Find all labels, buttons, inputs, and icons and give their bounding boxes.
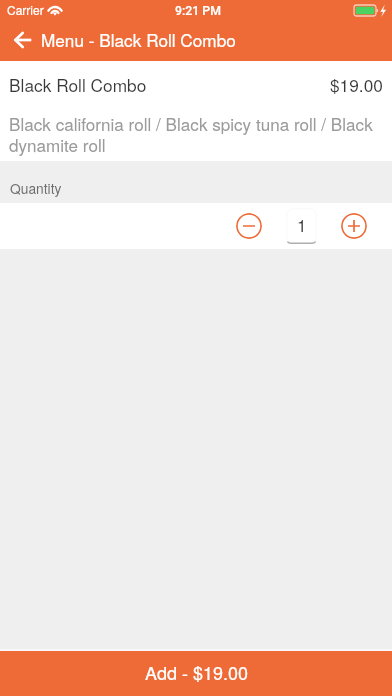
staticText: Quantity [10,178,62,198]
staticText: Add - $19.00 [145,659,248,685]
staticText: Black Roll Combo [9,72,147,97]
staticText: Black california roll / Black spicy tuna… [9,111,380,156]
button[interactable]: Quantity value [286,208,317,244]
staticText: 1 [297,212,307,236]
button[interactable]: Increase quantity [341,213,367,239]
staticText: 9:21 PM [175,4,221,18]
staticText: $19.00 [330,72,383,97]
staticText: Carrier [7,1,44,18]
staticText: Menu - Black Roll Combo [41,27,236,52]
button[interactable]: Back [0,20,43,61]
button[interactable]: Decrease quantity [236,213,262,239]
button[interactable]: Add - $19.00 [0,651,392,696]
